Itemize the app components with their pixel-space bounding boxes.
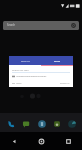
staticText: More xyxy=(16,82,22,85)
button[interactable]: Recents xyxy=(55,132,82,150)
button[interactable]: Apps xyxy=(52,119,61,128)
button[interactable]: Camera xyxy=(67,119,76,128)
button[interactable]: Phone xyxy=(6,119,15,128)
button[interactable]: Search for files xyxy=(9,66,73,72)
staticText: /storage/emulated/0/Pictures xyxy=(16,75,47,78)
button[interactable]: Messages xyxy=(21,119,30,128)
button[interactable]: /storage/emulated/0/Pictures xyxy=(12,73,73,79)
staticText: Search for files xyxy=(12,68,29,71)
button[interactable]: Home xyxy=(28,132,55,150)
button[interactable]: More xyxy=(12,82,22,85)
staticText: Search xyxy=(7,23,16,27)
button[interactable]: RECENT xyxy=(9,56,41,65)
button[interactable]: Settings xyxy=(70,22,77,29)
staticText: RECENT xyxy=(21,59,30,62)
staticText: FILES xyxy=(54,59,61,62)
button[interactable]: Search in xyxy=(60,82,70,85)
button[interactable]: Browser xyxy=(37,119,46,128)
button[interactable]: Search xyxy=(3,21,79,30)
button[interactable]: FILES xyxy=(41,56,73,65)
button[interactable]: Back xyxy=(0,132,28,150)
